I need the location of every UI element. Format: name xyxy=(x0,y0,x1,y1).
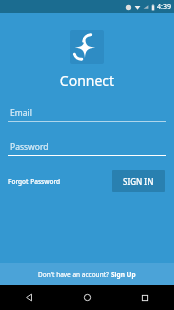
button[interactable]: Don't have an account? xyxy=(0,263,174,285)
button[interactable]: Forgot Password xyxy=(8,173,61,190)
staticText: Forgot Password xyxy=(8,177,61,186)
staticText: Sign Up xyxy=(111,270,136,279)
button[interactable]: Recent apps xyxy=(116,285,174,310)
staticText: Email xyxy=(10,107,32,119)
staticText: Connect xyxy=(0,71,174,90)
staticText: Password xyxy=(10,141,49,153)
staticText: Don't have an account? xyxy=(38,270,111,279)
button[interactable]: Home xyxy=(58,285,116,310)
button[interactable]: SIGN IN xyxy=(112,170,165,192)
staticText: SIGN IN xyxy=(123,176,154,187)
button[interactable]: Back xyxy=(0,285,58,310)
staticText: 4:39 xyxy=(157,2,171,12)
